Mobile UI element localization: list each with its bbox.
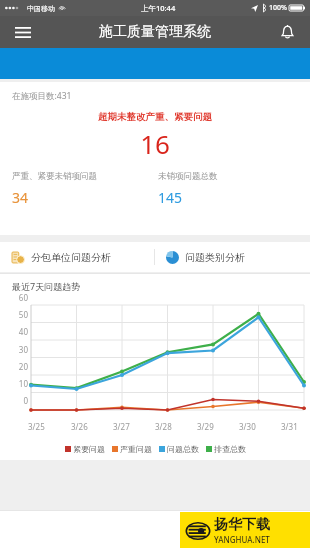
staticText: 排查总数 [214,444,246,454]
staticText: 100% [269,3,287,13]
button[interactable]: 问题类别分析 [166,242,310,272]
staticText: 超期未整改产重、紧要问题 [0,111,310,123]
staticText: 40 [18,326,28,337]
staticText: 3/26 [71,421,88,432]
staticText: 问题类别分析 [185,251,245,264]
staticText: 施工质量管理系统 [99,23,211,41]
staticText: 34 [12,188,29,207]
staticText: 30 [18,344,28,355]
staticText: 紧要问题 [73,444,105,454]
staticText: 上午10:44 [141,3,176,13]
button[interactable]: 严重、紧要未销项问题 [12,171,155,207]
staticText: 20 [18,361,28,372]
staticText: YANGHUA.NET [214,534,270,545]
staticText: 3/29 [197,421,214,432]
staticText: 未销项问题总数 [158,171,218,182]
button[interactable]: 扬华下载 YANGHUA.NET [180,512,310,548]
staticText: 3/31 [281,421,298,432]
staticText: 0 [23,395,28,406]
staticText: 60 [18,292,28,303]
button[interactable]: 分包单位问题分析 [12,242,154,272]
button[interactable]: 未销项问题总数 [158,171,310,207]
staticText: 最近7天问题趋势 [12,280,81,292]
staticText: 扬华下载 [214,516,270,534]
button[interactable]: Notifications [274,19,300,45]
staticText: 3/27 [113,421,130,432]
staticText: 3/25 [28,421,45,432]
staticText: 问题总数 [167,444,199,454]
staticText: 10 [18,378,28,389]
staticText: 中国移动 [27,4,55,13]
staticText: 在施项目数:431 [12,90,72,102]
staticText: 16 [0,126,310,161]
staticText: 3/28 [155,421,172,432]
staticText: 3/30 [239,421,256,432]
button[interactable]: Menu [10,19,36,45]
staticText: 严重问题 [120,444,152,454]
staticText: 分包单位问题分析 [31,251,111,264]
staticText: 严重、紧要未销项问题 [12,171,97,182]
staticText: 50 [18,309,28,320]
staticText: 145 [158,188,183,207]
